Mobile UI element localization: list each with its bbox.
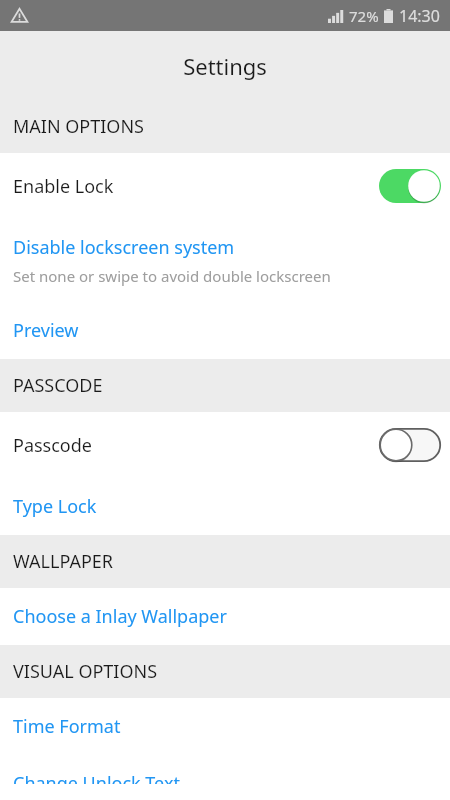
staticText: MAIN OPTIONS bbox=[13, 114, 144, 139]
staticText: Choose a Inlay Wallpaper bbox=[13, 604, 227, 629]
button[interactable]: Change Unlock Text bbox=[0, 755, 450, 800]
staticText: Type Lock bbox=[13, 494, 97, 519]
staticText: Passcode bbox=[13, 433, 92, 458]
staticText: 72% bbox=[349, 6, 379, 26]
button[interactable]: Disable lockscreen system bbox=[0, 219, 450, 302]
button[interactable]: Switch on bbox=[379, 169, 441, 203]
button[interactable]: Time Format bbox=[0, 698, 450, 755]
staticText: Disable lockscreen system bbox=[13, 235, 235, 260]
staticText: Time Format bbox=[13, 714, 121, 739]
button[interactable]: Type Lock bbox=[0, 478, 450, 535]
button[interactable]: Passcode bbox=[0, 412, 450, 478]
staticText: VISUAL OPTIONS bbox=[13, 659, 158, 684]
staticText: WALLPAPER bbox=[13, 549, 113, 574]
staticText: 14:30 bbox=[399, 5, 440, 27]
staticText: Settings bbox=[183, 51, 267, 81]
staticText: Preview bbox=[13, 318, 79, 343]
staticText: Change Unlock Text bbox=[13, 771, 180, 784]
staticText: PASSCODE bbox=[13, 373, 103, 398]
staticText: Enable Lock bbox=[13, 174, 114, 199]
button[interactable]: Preview bbox=[0, 302, 450, 359]
staticText: Set none or swipe to avoid double locksc… bbox=[13, 266, 331, 286]
button[interactable]: Switch off bbox=[379, 428, 441, 462]
button[interactable]: Choose a Inlay Wallpaper bbox=[0, 588, 450, 645]
button[interactable]: Enable Lock bbox=[0, 153, 450, 219]
